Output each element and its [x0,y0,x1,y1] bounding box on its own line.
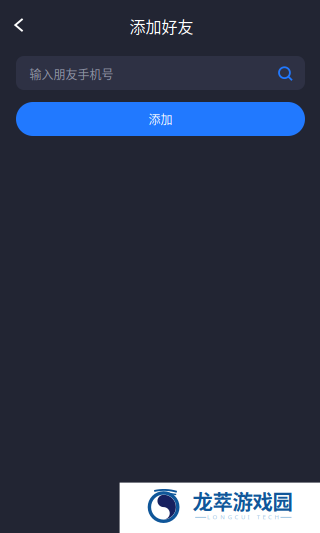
staticText: 输入朋友手机号 [30,65,114,83]
staticText: 添加 [148,110,172,128]
button[interactable]: 输入朋友手机号 [16,56,305,90]
button[interactable]: 返回 [0,4,40,48]
staticText: LONGCUI TECH [207,513,279,521]
staticText: 添加好友 [129,14,193,38]
button[interactable]: 添加 [16,102,305,136]
staticText: 龙萃游戏园 [192,486,292,516]
